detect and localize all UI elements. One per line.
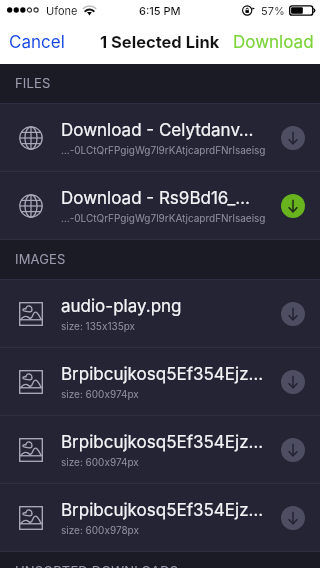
- button[interactable]: audio-play.png: [0, 280, 320, 347]
- staticText: UNSORTED DOWNLOADS: [15, 563, 179, 568]
- button[interactable]: Download: [281, 126, 305, 150]
- button[interactable]: Download: [281, 506, 305, 530]
- staticText: Brpibcujkosq5Ef354Ejz…: [61, 432, 264, 453]
- staticText: audio-play.png: [61, 296, 182, 317]
- button[interactable]: Download - Rs9Bd16_…: [0, 172, 320, 239]
- staticText: 57%: [261, 4, 285, 17]
- button[interactable]: Download: [281, 438, 305, 462]
- staticText: …-0LCtQrFPgigWg7l9rKAtjcaprdFNrlsaeisg: [61, 144, 266, 156]
- button[interactable]: Download: [221, 20, 320, 64]
- staticText: 1 Selected Link: [100, 32, 220, 52]
- button[interactable]: Download - Celytdanv…: [0, 104, 320, 171]
- staticText: Ufone: [46, 4, 78, 17]
- button[interactable]: Cancel: [0, 20, 77, 64]
- button[interactable]: Download: [281, 302, 305, 326]
- button[interactable]: Download: [281, 194, 305, 218]
- staticText: FILES: [15, 75, 51, 91]
- button[interactable]: Brpibcujkosq5Ef354Ejz…: [0, 416, 320, 483]
- button[interactable]: Download: [281, 370, 305, 394]
- staticText: Download: [233, 32, 314, 53]
- staticText: Cancel: [9, 32, 65, 53]
- button[interactable]: Brpibcujkosq5Ef354Ejz…: [0, 484, 320, 551]
- staticText: 6:15 PM: [139, 4, 181, 17]
- staticText: size: 135x135px: [61, 320, 136, 332]
- button[interactable]: Brpibcujkosq5Ef354Ejz…: [0, 348, 320, 415]
- staticText: Brpibcujkosq5Ef354Ejz…: [61, 364, 264, 385]
- staticText: size: 600x974px: [61, 456, 139, 468]
- staticText: size: 600x978px: [61, 524, 139, 536]
- staticText: Download - Celytdanv…: [61, 120, 254, 141]
- staticText: …-0LCtQrFPgigWg7l9rKAtjcaprdFNrlsaeisg: [61, 212, 266, 224]
- staticText: Download - Rs9Bd16_…: [61, 188, 251, 209]
- staticText: size: 600x974px: [61, 388, 139, 400]
- staticText: IMAGES: [15, 251, 66, 267]
- staticText: Brpibcujkosq5Ef354Ejz…: [61, 500, 264, 521]
